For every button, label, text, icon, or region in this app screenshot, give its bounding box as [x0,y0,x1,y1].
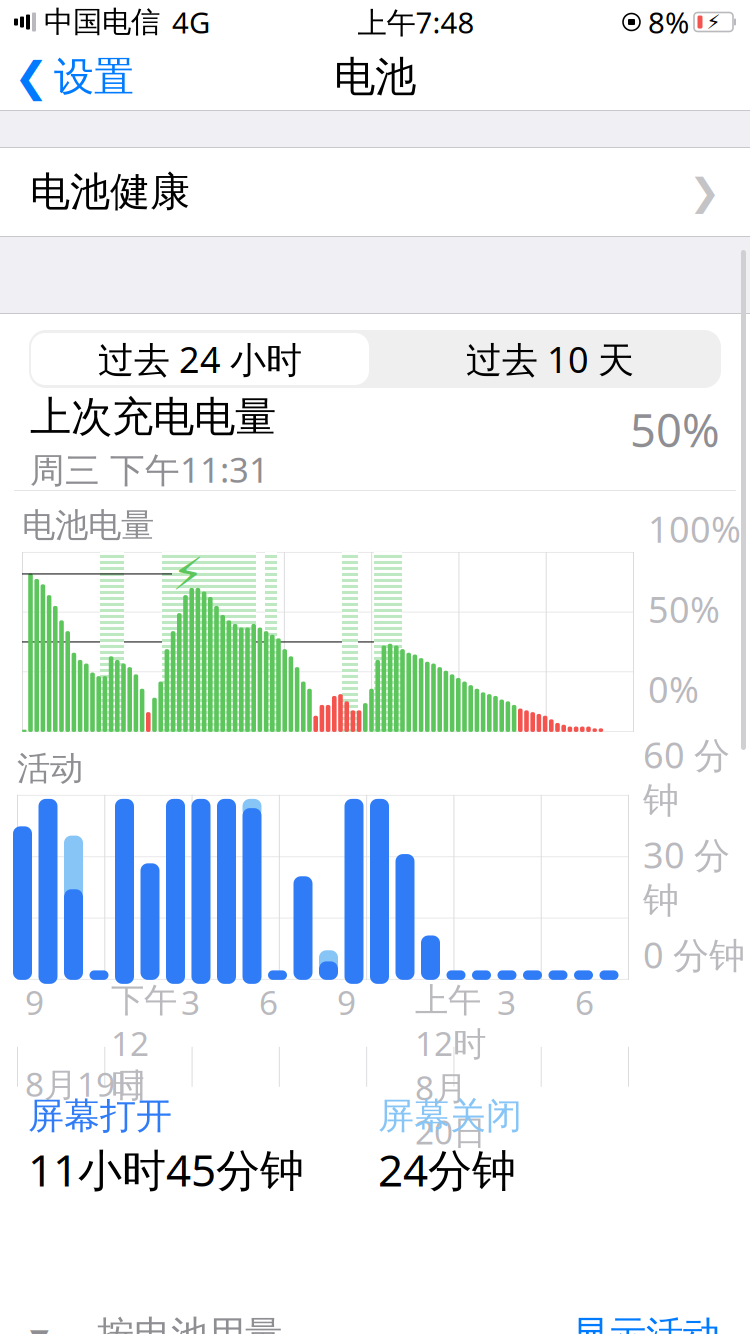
staticText: 屏幕打开 [28,1094,172,1138]
staticText: 设置 [54,52,134,101]
staticText: 9 [337,980,356,1024]
staticText: 50% [648,585,720,633]
staticText: 9 [25,980,44,1024]
staticText: 上午7:48 [357,2,474,41]
staticText: 8月20日 [415,1065,486,1154]
staticText: 3 [181,980,200,1024]
staticText: 电池 [334,52,416,102]
staticText: ⚡︎ [706,11,720,33]
staticText: 显示活动 [572,1312,720,1334]
staticText: 过去 24 小时 [98,335,302,383]
staticText: ⚡︎ [172,548,204,600]
staticText: ❯ [689,171,720,213]
staticText: 屏幕关闭 [378,1094,522,1138]
staticText: 12时 [415,1021,486,1065]
staticText: 30 分钟 [643,830,730,922]
staticText: 0% [648,665,699,713]
staticText: 8% [648,2,689,41]
staticText: 50% [630,400,720,460]
staticText: ❮ [14,53,49,100]
staticText: 过去 10 天 [466,335,634,383]
staticText: 活动 [17,748,83,789]
button[interactable]: 过去 10 天 [381,333,719,385]
staticText: 12时 [111,1021,149,1106]
staticText: ▾ 按电池用量 [30,1312,282,1334]
staticText: 8月19日 [25,1062,148,1106]
staticText: 上午 [415,980,481,1021]
staticText: 周三 下午11:31 [30,446,269,492]
button[interactable]: ❮ [0,44,148,110]
staticText: 11小时45分钟 [28,1140,304,1198]
staticText: 4G [172,2,210,41]
staticText: 下午 [111,980,177,1021]
staticText: 电池健康 [30,167,190,216]
staticText: 24分钟 [378,1140,516,1198]
staticText: 6 [259,980,278,1024]
staticText: 6 [575,980,594,1024]
staticText: 3 [497,980,516,1024]
button[interactable]: 过去 24 小时 [31,333,369,385]
staticText: 0 分钟 [643,931,745,978]
button[interactable]: 电池健康 [0,148,750,236]
staticText: 中国电信 [44,4,160,40]
staticText: 电池电量 [22,505,154,546]
staticText: 上次充电电量 [30,392,276,442]
staticText: 100% [648,505,741,553]
staticText: 60 分钟 [643,730,730,822]
